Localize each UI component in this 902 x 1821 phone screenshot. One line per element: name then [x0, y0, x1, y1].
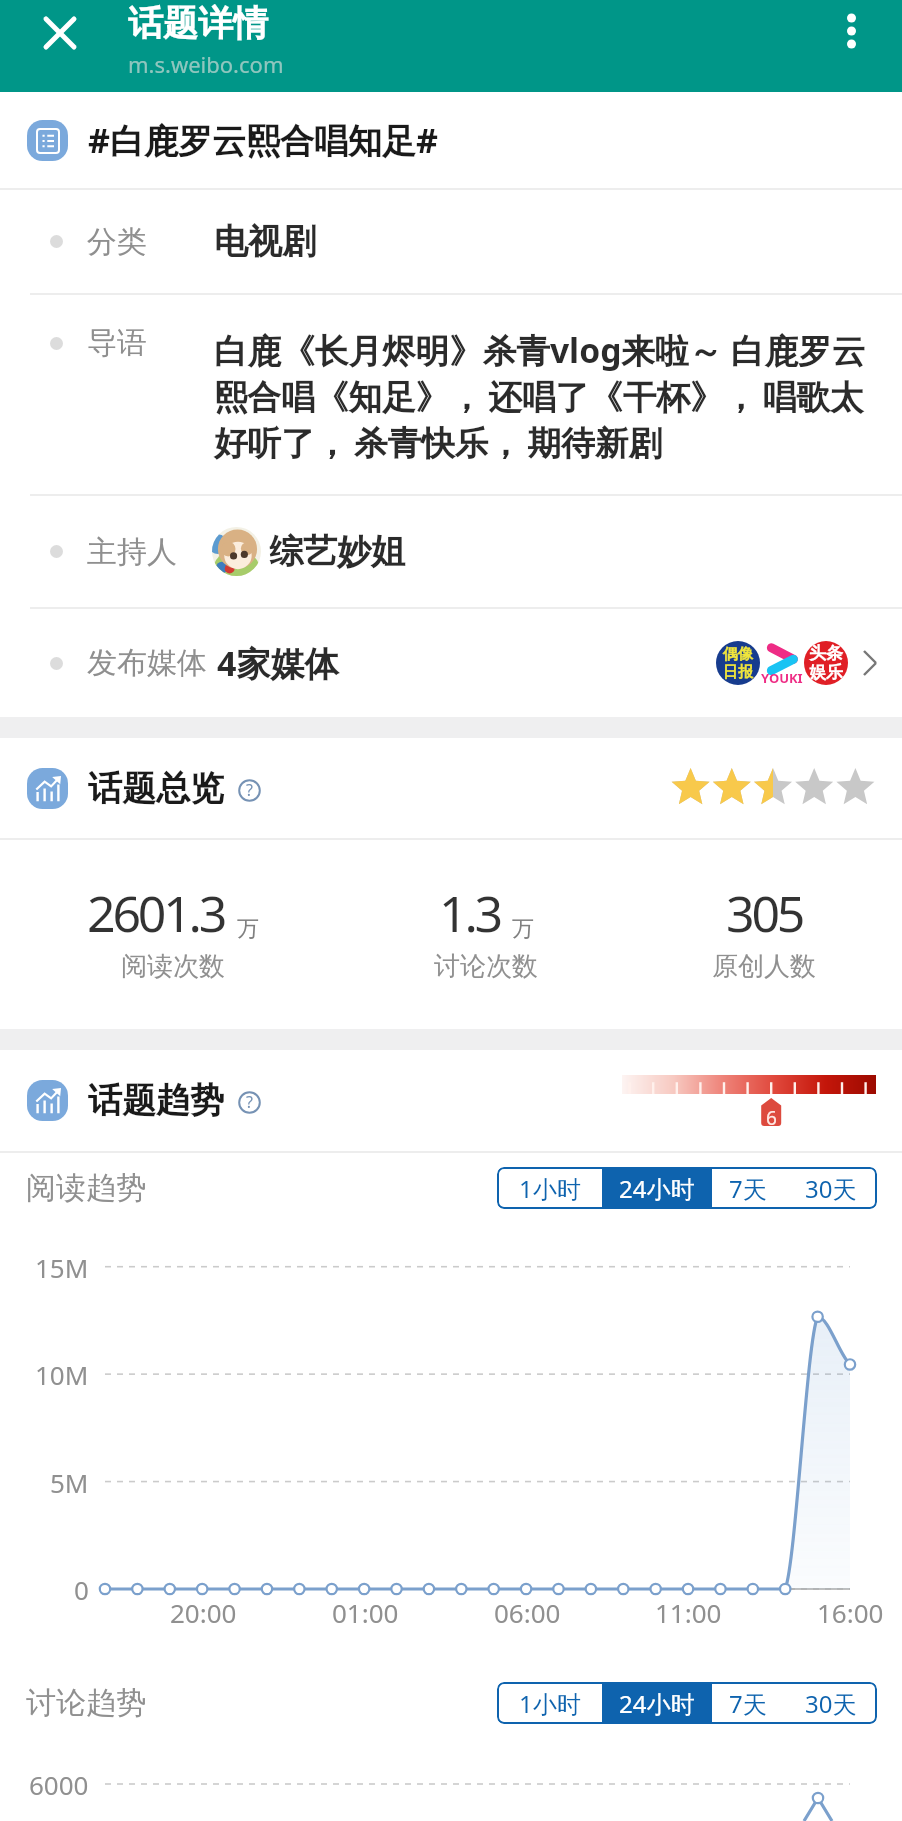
staticText: 原创人数	[712, 950, 816, 983]
staticText: 偶像 日报	[723, 645, 753, 681]
staticText: 万	[237, 915, 259, 943]
staticText: 讨论次数	[434, 950, 538, 983]
staticText: 万	[512, 915, 534, 943]
staticText: 7天	[729, 1172, 767, 1205]
staticText: 4家媒体	[217, 640, 339, 686]
staticText: 阅读次数	[121, 950, 225, 983]
staticText: 01:00	[332, 1595, 399, 1630]
staticText: 6000	[29, 1767, 89, 1802]
staticText: 5M	[50, 1465, 89, 1500]
staticText: 20:00	[170, 1595, 237, 1630]
staticText: 24小时	[619, 1687, 695, 1720]
staticText: 导语	[87, 324, 147, 362]
button[interactable]: 主持人	[0, 496, 902, 607]
staticText: m.s.weibo.com	[128, 49, 284, 79]
button[interactable]: 发布媒体	[0, 609, 902, 717]
button[interactable]: #白鹿罗云熙合唱知足#	[0, 92, 902, 188]
staticText: 阅读趋势	[26, 1169, 146, 1207]
button[interactable]: 7天	[712, 1682, 784, 1724]
button[interactable]: More options	[825, 9, 877, 61]
staticText: ?	[246, 1091, 253, 1113]
button[interactable]: 24小时	[602, 1167, 712, 1209]
staticText: 话题趋势	[88, 1079, 224, 1122]
staticText: 16:00	[817, 1595, 884, 1630]
staticText: 电视剧	[214, 220, 316, 263]
button[interactable]: 30天	[784, 1682, 877, 1724]
staticText: 11:00	[655, 1595, 722, 1630]
staticText: 15M	[35, 1250, 89, 1285]
staticText: 0	[74, 1572, 89, 1607]
staticText: ?	[246, 779, 253, 801]
button[interactable]: Close	[34, 7, 86, 59]
staticText: 分类	[87, 223, 147, 261]
button[interactable]: 24小时	[602, 1682, 712, 1724]
staticText: 综艺妙姐	[269, 530, 405, 573]
staticText: 1小时	[519, 1687, 581, 1720]
staticText: 6	[766, 1105, 777, 1131]
staticText: 1.3	[439, 879, 500, 947]
staticText: 24小时	[619, 1172, 695, 1205]
staticText: 发布媒体	[87, 644, 207, 682]
staticText: #白鹿罗云熙合唱知足#	[88, 117, 438, 163]
button[interactable]: 30天	[784, 1167, 877, 1209]
staticText: 7天	[729, 1687, 767, 1720]
button[interactable]: 1小时	[497, 1167, 602, 1209]
button[interactable]: 1小时	[497, 1682, 602, 1724]
staticText: 话题详情	[128, 1, 268, 45]
staticText: 30天	[805, 1687, 857, 1720]
staticText: 2601.3	[87, 879, 225, 947]
staticText: 06:00	[494, 1595, 561, 1630]
staticText: 30天	[805, 1172, 857, 1205]
staticText: 讨论趋势	[26, 1684, 146, 1722]
staticText: 头条 娱乐	[809, 643, 843, 683]
staticText: 305	[726, 879, 803, 947]
staticText: 白鹿《长月烬明》杀青vlog来啦～ 白鹿罗云熙合唱《知足》， 还唱了《干杯》， …	[214, 327, 890, 465]
staticText: 主持人	[87, 533, 177, 571]
staticText: 1小时	[519, 1172, 581, 1205]
staticText: 10M	[35, 1357, 89, 1392]
staticText: 话题总览	[88, 767, 224, 810]
button[interactable]: 7天	[712, 1167, 784, 1209]
staticText: YOUKI	[761, 669, 803, 687]
